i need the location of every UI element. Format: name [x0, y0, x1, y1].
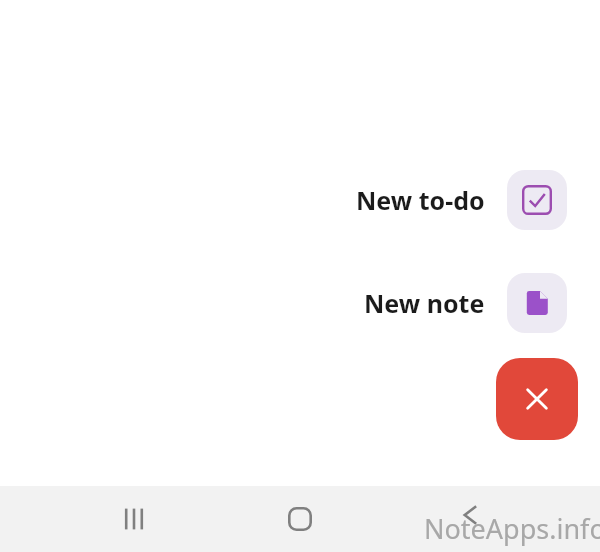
- staticText: NoteApps.info: [424, 510, 600, 547]
- button[interactable]: Home: [270, 489, 330, 549]
- button[interactable]: [507, 273, 567, 333]
- button[interactable]: Recents: [104, 489, 164, 549]
- staticText: New to-do: [356, 183, 485, 217]
- staticText: New note: [364, 286, 485, 320]
- button[interactable]: [507, 170, 567, 230]
- button[interactable]: Back: [440, 485, 500, 545]
- button[interactable]: Close menu: [496, 358, 578, 440]
